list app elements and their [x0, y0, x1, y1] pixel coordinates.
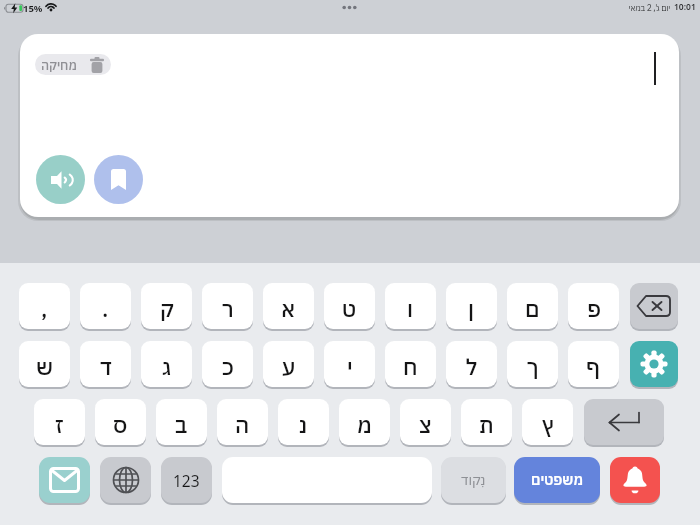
- button[interactable]: ש: [19, 341, 70, 387]
- staticText: נ: [299, 410, 308, 439]
- button[interactable]: ק: [141, 283, 192, 329]
- staticText: ח: [403, 352, 418, 381]
- staticText: נִקוד: [461, 471, 486, 489]
- button[interactable]: [94, 155, 143, 204]
- button[interactable]: צ: [400, 399, 451, 445]
- button[interactable]: [222, 457, 432, 503]
- staticText: ד: [100, 352, 112, 381]
- staticText: יום ג', 2 במאי: [628, 2, 670, 13]
- staticText: א: [281, 294, 296, 323]
- button[interactable]: א: [263, 283, 314, 329]
- staticText: פ: [587, 294, 601, 323]
- staticText: צ: [419, 410, 432, 439]
- staticText: י: [347, 352, 353, 381]
- button[interactable]: מחיקה: [35, 54, 111, 75]
- staticText: ה: [235, 410, 250, 439]
- button[interactable]: ף: [568, 341, 619, 387]
- staticText: ,: [41, 294, 48, 323]
- staticText: ת: [479, 410, 494, 439]
- staticText: מחיקה: [41, 57, 77, 73]
- button[interactable]: י: [324, 341, 375, 387]
- button[interactable]: ת: [461, 399, 512, 445]
- button[interactable]: כ: [202, 341, 253, 387]
- button[interactable]: ,: [19, 283, 70, 329]
- button[interactable]: .: [80, 283, 131, 329]
- button[interactable]: ן: [446, 283, 497, 329]
- button[interactable]: משפטים: [514, 457, 600, 503]
- button[interactable]: ץ: [522, 399, 573, 445]
- staticText: ש: [36, 352, 54, 381]
- button[interactable]: ג: [141, 341, 192, 387]
- button[interactable]: ו: [385, 283, 436, 329]
- button[interactable]: ס: [95, 399, 146, 445]
- button[interactable]: נ: [278, 399, 329, 445]
- staticText: ם: [525, 294, 540, 323]
- button[interactable]: ה: [217, 399, 268, 445]
- button[interactable]: ר: [202, 283, 253, 329]
- button[interactable]: [610, 457, 660, 503]
- staticText: כ: [222, 352, 234, 381]
- button[interactable]: [630, 283, 678, 329]
- staticText: ף: [586, 352, 601, 381]
- staticText: ב: [175, 410, 188, 439]
- staticText: 10:01: [674, 1, 696, 13]
- staticText: משפטים: [531, 471, 583, 489]
- staticText: ז: [55, 410, 64, 439]
- staticText: מ: [357, 410, 372, 439]
- staticText: ע: [282, 352, 296, 381]
- button[interactable]: ט: [324, 283, 375, 329]
- button[interactable]: ח: [385, 341, 436, 387]
- staticText: ו: [407, 294, 414, 323]
- staticText: ס: [113, 410, 128, 439]
- staticText: ל: [466, 352, 477, 381]
- button[interactable]: [36, 155, 85, 204]
- button[interactable]: 123: [161, 457, 212, 503]
- staticText: 15%: [23, 2, 43, 15]
- staticText: ר: [222, 294, 234, 323]
- button[interactable]: [100, 457, 151, 503]
- button[interactable]: ז: [34, 399, 85, 445]
- button[interactable]: מ: [339, 399, 390, 445]
- staticText: 123: [173, 470, 200, 491]
- button[interactable]: ם: [507, 283, 558, 329]
- button[interactable]: [630, 341, 678, 387]
- button[interactable]: ל: [446, 341, 497, 387]
- staticText: ץ: [542, 410, 554, 439]
- staticText: ט: [342, 294, 357, 323]
- button[interactable]: ב: [156, 399, 207, 445]
- button[interactable]: [39, 457, 90, 503]
- button[interactable]: [584, 399, 664, 445]
- button[interactable]: נִקוד: [441, 457, 506, 503]
- button[interactable]: ך: [507, 341, 558, 387]
- button[interactable]: ד: [80, 341, 131, 387]
- staticText: ג: [162, 352, 172, 381]
- button[interactable]: ע: [263, 341, 314, 387]
- staticText: ק: [160, 294, 174, 323]
- staticText: ך: [527, 352, 539, 381]
- button[interactable]: פ: [568, 283, 619, 329]
- staticText: .: [102, 294, 109, 323]
- staticText: ן: [468, 294, 475, 323]
